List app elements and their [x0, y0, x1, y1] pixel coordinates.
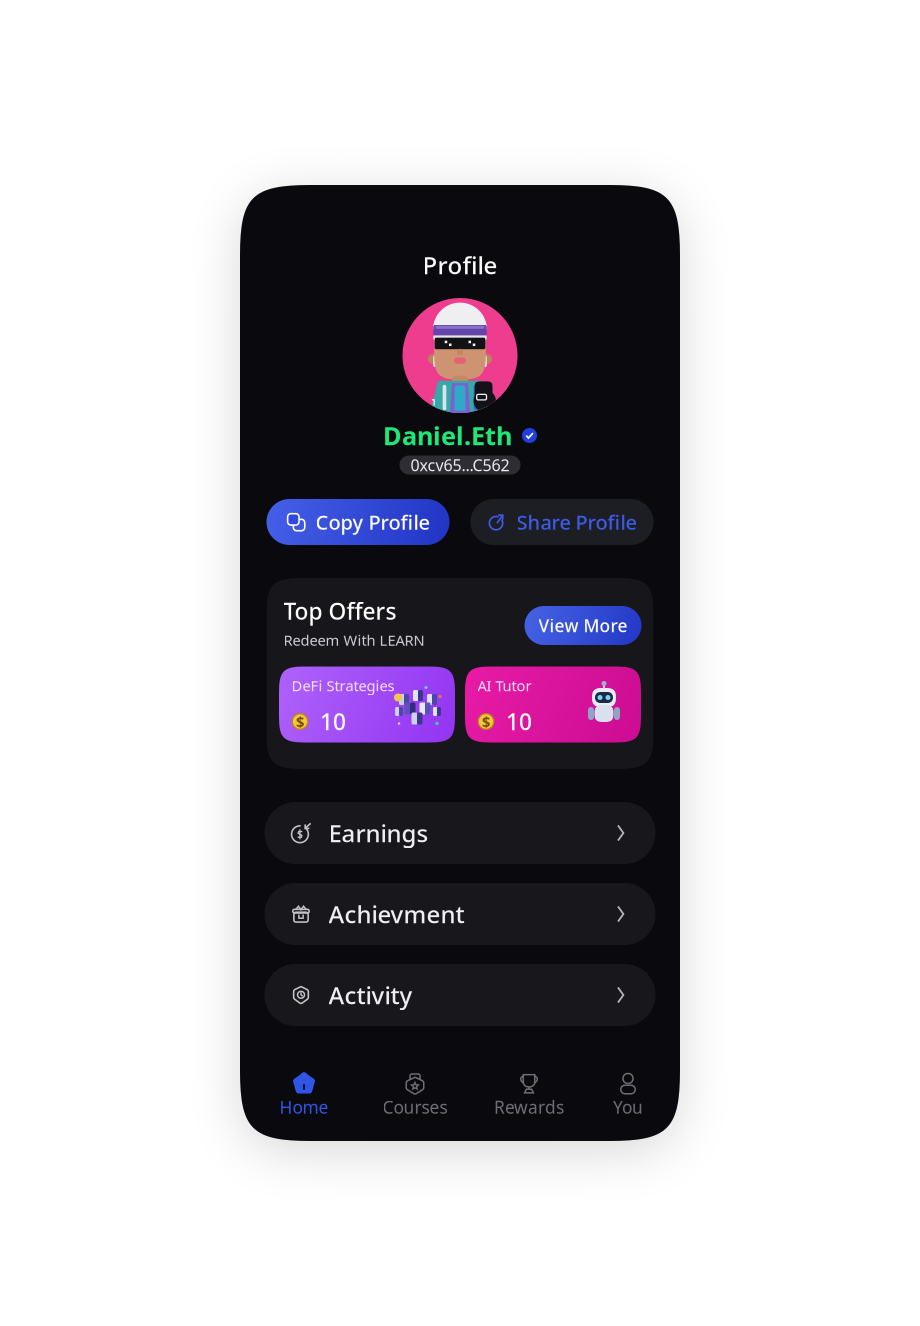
button[interactable]: Activity — [264, 964, 655, 1026]
button[interactable]: Copy Profile — [266, 499, 449, 545]
staticText: You — [613, 1095, 643, 1118]
staticText: Achievment — [328, 898, 464, 930]
button[interactable]: DeFi Strategies — [279, 666, 455, 742]
staticText: Profile — [422, 249, 497, 281]
staticText: $ — [482, 712, 490, 731]
staticText: AI Tutor — [477, 676, 531, 695]
button[interactable]: Rewards — [474, 1067, 584, 1119]
staticText: Courses — [382, 1095, 447, 1118]
button[interactable]: Home — [249, 1067, 359, 1119]
staticText: 10 — [320, 706, 346, 736]
staticText: 0xcv65...C562 — [410, 454, 509, 476]
staticText: $ — [296, 712, 304, 731]
button[interactable]: AI Tutor — [465, 666, 641, 742]
button[interactable]: View More — [524, 606, 641, 645]
button[interactable]: Achievment — [264, 883, 655, 945]
staticText: Activity — [328, 979, 412, 1011]
staticText: View More — [538, 614, 627, 637]
staticText: Copy Profile — [315, 509, 429, 535]
staticText: Redeem With LEARN — [283, 630, 424, 650]
staticText: Rewards — [494, 1095, 564, 1118]
staticText: Home — [279, 1095, 328, 1118]
staticText: Top Offers — [283, 596, 396, 626]
button[interactable]: Share Profile — [470, 499, 653, 545]
staticText: Share Profile — [516, 509, 636, 535]
staticText: DeFi Strategies — [291, 676, 394, 695]
button[interactable]: Earnings — [264, 802, 655, 864]
staticText: Earnings — [328, 817, 428, 849]
staticText: 10 — [506, 706, 532, 736]
staticText: Daniel.Eth — [383, 419, 512, 452]
button[interactable]: You — [573, 1067, 683, 1119]
button[interactable]: Courses — [360, 1067, 470, 1119]
